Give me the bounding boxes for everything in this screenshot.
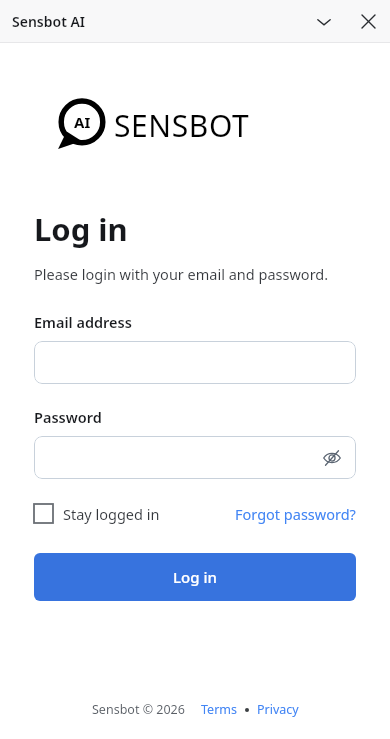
staticText: Log in (173, 567, 217, 587)
staticText: Email address (34, 312, 132, 332)
button[interactable]: Show password (34, 436, 356, 479)
staticText: Terms (201, 701, 237, 718)
button[interactable] (34, 341, 356, 384)
staticText: Sensbot AI (12, 12, 86, 31)
staticText: Stay logged in (63, 504, 160, 524)
staticText: Sensbot © 2026 (92, 701, 185, 718)
staticText: Privacy (257, 701, 299, 718)
button[interactable]: Minimize (302, 0, 346, 43)
staticText: Log in (34, 208, 128, 250)
button[interactable]: Close (346, 0, 390, 43)
button[interactable]: Show password (318, 444, 346, 472)
button[interactable]: Stay logged in (34, 500, 160, 527)
staticText: Please login with your email and passwor… (34, 264, 329, 284)
button[interactable]: Forgot password? (235, 504, 356, 524)
staticText: Forgot password? (235, 504, 356, 524)
button[interactable]: Terms (201, 701, 237, 718)
button[interactable]: Log in (34, 553, 356, 601)
staticText: AI (74, 112, 91, 132)
button[interactable]: Privacy (257, 701, 299, 718)
staticText: SENSBOT (114, 105, 250, 146)
staticText: Password (34, 407, 102, 427)
